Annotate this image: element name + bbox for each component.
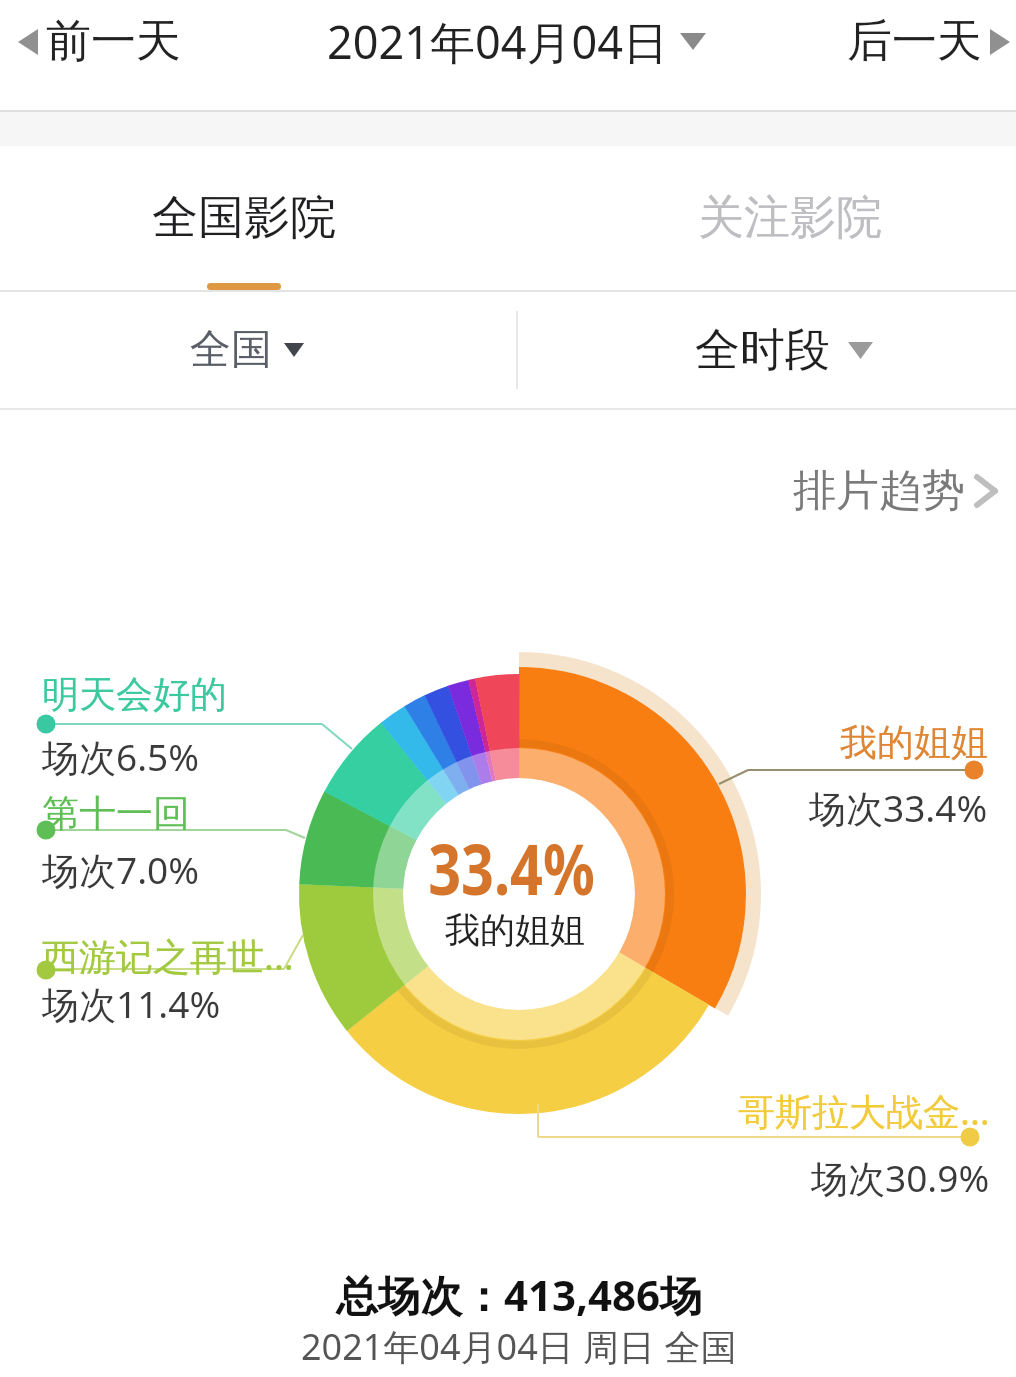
staticText: 33.4% [428,820,595,915]
button[interactable]: 后一天 [843,9,1014,74]
staticText: 2021年04月04日 周日 全国 [301,1322,737,1371]
button[interactable]: 排片趋势 [793,464,997,518]
staticText: 总场次：413,486场 [336,1266,703,1323]
staticText: 明天会好的 [42,671,227,718]
staticText: 排片趋势 [793,464,965,518]
staticText: 后一天 [847,13,982,70]
staticText: 场次7.0% [42,844,199,895]
staticText: 场次33.4% [809,782,988,833]
staticText: 关注影院 [698,189,882,247]
staticText: 全国 [190,324,272,376]
button[interactable]: 全国影院 [0,146,508,290]
staticText: 我的姐姐 [445,908,585,952]
staticText: 我的姐姐 [840,719,988,766]
staticText: 全国影院 [152,189,336,247]
button[interactable]: 2021年04月04日 [327,11,706,72]
staticText: 西游记之再世... [42,930,294,981]
staticText: 2021年04月04日 [327,11,668,72]
staticText: 第十一回 [42,790,190,837]
button[interactable]: 全时段 [508,292,1016,408]
staticText: 全时段 [695,322,830,379]
staticText: 场次6.5% [42,731,199,782]
button[interactable]: 关注影院 [508,146,1016,290]
staticText: 场次30.9% [811,1152,990,1203]
button[interactable]: 全国 [0,292,508,408]
staticText: 前一天 [46,13,181,70]
staticText: 哥斯拉大战金... [738,1085,990,1136]
staticText: 场次11.4% [42,978,221,1029]
button[interactable]: 前一天 [14,9,185,74]
